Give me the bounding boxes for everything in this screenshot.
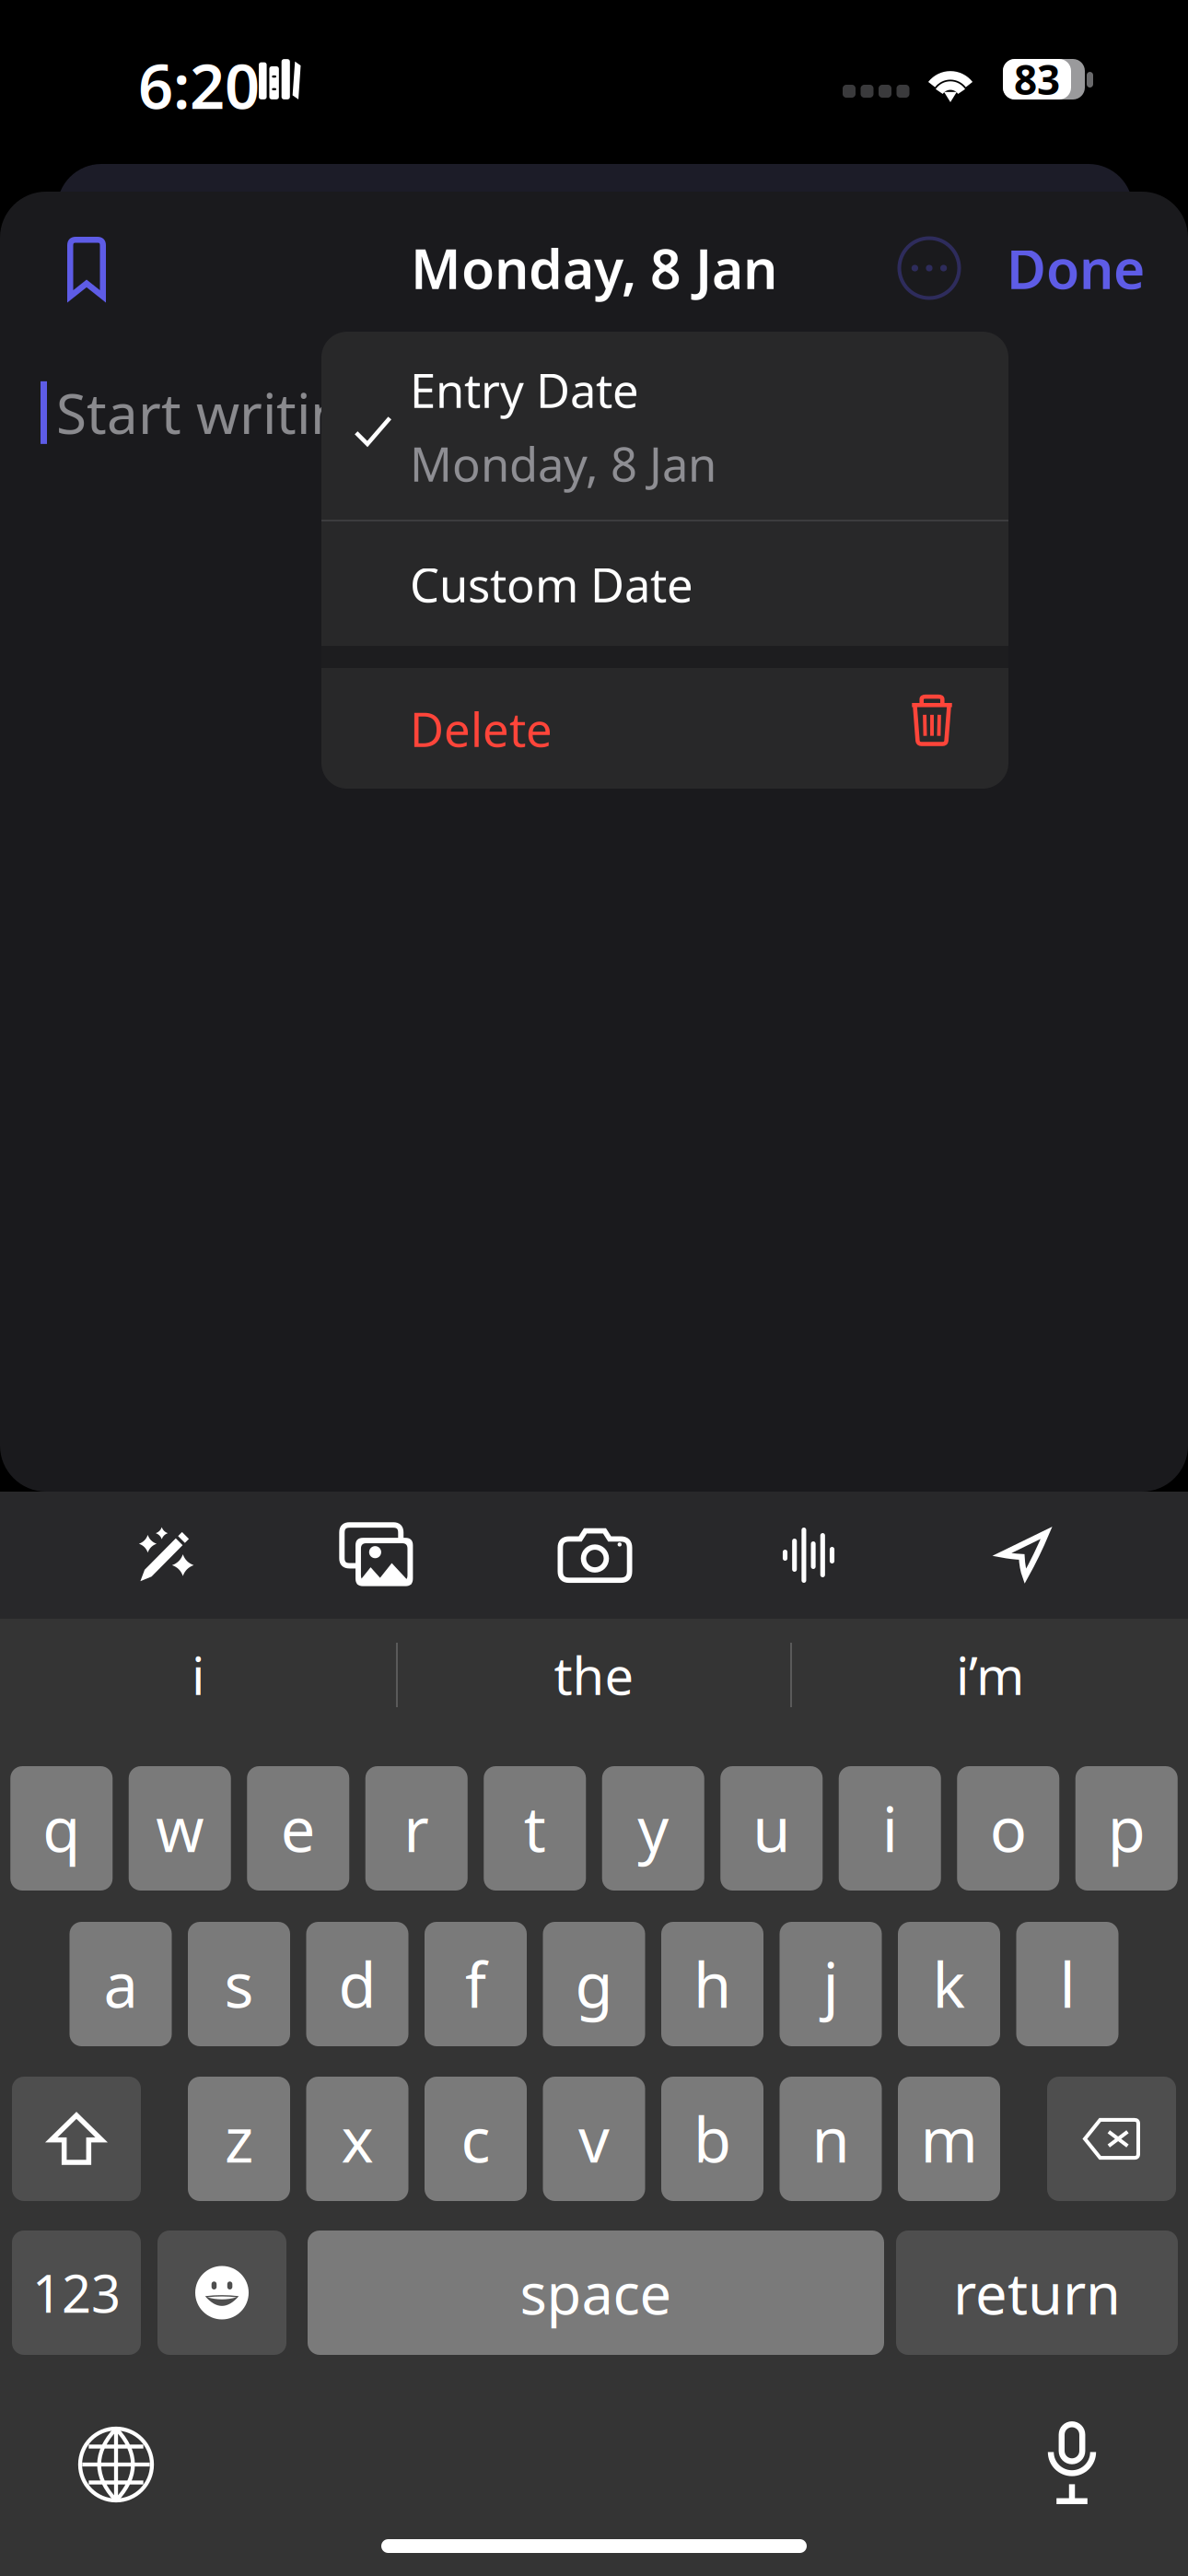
button[interactable]: i [839,1766,941,1891]
button[interactable]: Next keyboard [42,2405,190,2524]
button[interactable]: Bookmark [36,213,137,323]
staticText: e [281,1788,316,1869]
button[interactable]: Entry Date [321,332,1008,520]
button[interactable]: t [484,1766,586,1891]
button[interactable]: x [306,2077,408,2201]
staticText: return [953,2255,1121,2330]
staticText: i [192,1641,204,1709]
button[interactable]: Location [937,1492,1112,1619]
staticText: n [812,2098,850,2180]
button[interactable]: q [10,1766,113,1891]
button[interactable]: a [70,1922,172,2046]
staticText: j [823,1943,839,2025]
staticText: f [465,1943,486,2025]
button[interactable]: y [602,1766,704,1891]
staticText: the [554,1641,634,1709]
staticText: t [524,1788,546,1869]
staticText: b [693,2098,731,2180]
staticText: d [338,1943,376,2025]
button[interactable]: Dictation [998,2405,1146,2524]
staticText: p [1108,1788,1145,1869]
staticText: Start writing... [56,376,423,449]
staticText: a [104,1943,138,2025]
button[interactable]: d [306,1922,408,2046]
staticText: z [225,2098,253,2180]
button[interactable]: p [1075,1766,1178,1891]
button[interactable]: Enhance [78,1492,253,1619]
button[interactable]: n [780,2077,882,2201]
button[interactable]: Audio [721,1492,896,1619]
staticText: l [1060,1943,1075,2025]
staticText: Custom Date [410,553,693,615]
staticText: g [575,1943,613,2025]
button[interactable]: k [898,1922,1000,2046]
button[interactable]: i [0,1619,396,1731]
button[interactable]: Custom Date [321,521,1008,646]
button[interactable]: return [896,2231,1178,2355]
button[interactable]: b [661,2077,763,2201]
staticText: c [461,2098,490,2180]
staticText: i [882,1788,898,1869]
button[interactable]: space [308,2231,884,2355]
staticText: Delete [410,698,553,760]
staticText: q [43,1788,80,1869]
button[interactable]: Shift [12,2077,141,2201]
button[interactable]: i’m [792,1619,1188,1731]
staticText: s [224,1943,254,2025]
button[interactable]: o [957,1766,1059,1891]
staticText: space [520,2255,672,2330]
button[interactable]: z [188,2077,290,2201]
button[interactable]: j [780,1922,882,2046]
staticText: k [932,1943,966,2025]
button[interactable]: s [188,1922,290,2046]
button[interactable]: u [720,1766,823,1891]
button[interactable]: Delete [1047,2077,1176,2201]
staticText: 123 [32,2258,121,2327]
staticText: i’m [956,1641,1024,1709]
staticText: o [990,1788,1027,1869]
button[interactable]: m [898,2077,1000,2201]
button[interactable]: Emoji [157,2231,286,2355]
button[interactable]: Photos [289,1492,464,1619]
button[interactable]: f [425,1922,527,2046]
staticText: Monday, 8 Jan [410,432,716,494]
button[interactable]: Done [1013,213,1138,323]
button[interactable]: h [661,1922,763,2046]
staticText: 6:20 [138,44,260,126]
button[interactable]: r [365,1766,468,1891]
button[interactable]: w [129,1766,231,1891]
staticText: r [404,1788,429,1869]
staticText: w [156,1788,204,1869]
staticText: u [753,1788,790,1869]
button[interactable]: e [247,1766,349,1891]
button[interactable]: Camera [507,1492,682,1619]
button[interactable]: More options [879,213,980,323]
staticText: v [578,2098,610,2180]
button[interactable]: c [425,2077,527,2201]
staticText: 83 [1014,52,1060,106]
staticText: Done [1007,232,1145,304]
staticText: Monday, 8 Jan [411,232,777,304]
staticText: h [693,1943,731,2025]
staticText: y [637,1788,669,1869]
button[interactable]: g [543,1922,645,2046]
button[interactable]: the [398,1619,790,1731]
button[interactable]: Delete [321,668,1008,789]
button[interactable]: v [543,2077,645,2201]
staticText: Entry Date [410,359,639,421]
button[interactable]: 123 [12,2231,141,2355]
staticText: m [920,2098,978,2180]
staticText: x [341,2098,373,2180]
button[interactable]: l [1016,1922,1118,2046]
